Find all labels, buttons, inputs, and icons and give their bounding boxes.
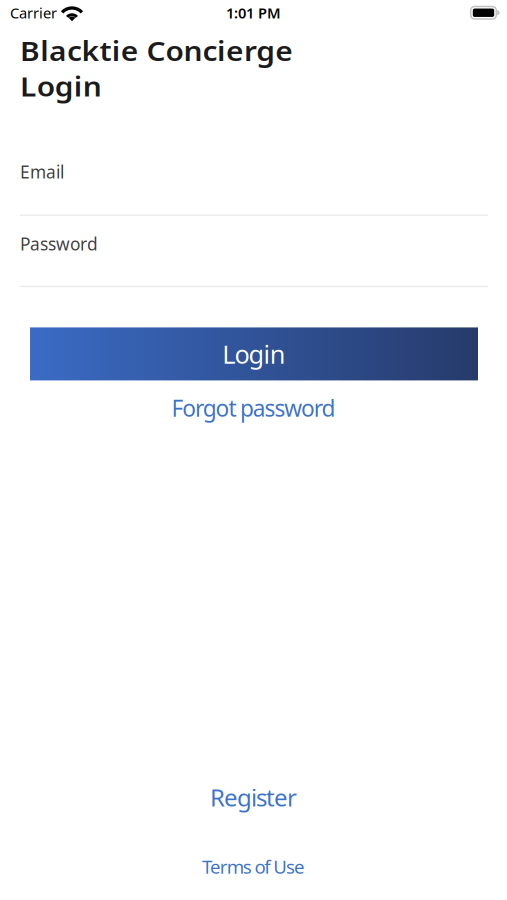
staticText: Email [20, 160, 64, 183]
staticText: Login [20, 68, 93, 104]
button[interactable]: Register [210, 781, 297, 813]
staticText: Carrier [10, 3, 57, 22]
staticText: Terms of Use [202, 854, 305, 879]
staticText: Password [20, 232, 98, 255]
staticText: Register [210, 781, 297, 813]
staticText: Login [222, 337, 286, 371]
button[interactable]: Email [20, 160, 488, 216]
staticText: Forgot password [171, 393, 336, 423]
button[interactable]: Password [20, 232, 488, 287]
button[interactable]: Login [30, 327, 478, 380]
staticText: 1:01 PM [226, 3, 281, 22]
button[interactable]: Forgot password [171, 393, 336, 423]
staticText: Blacktie Concierge [20, 33, 264, 68]
button[interactable]: Terms of Use [202, 854, 305, 879]
